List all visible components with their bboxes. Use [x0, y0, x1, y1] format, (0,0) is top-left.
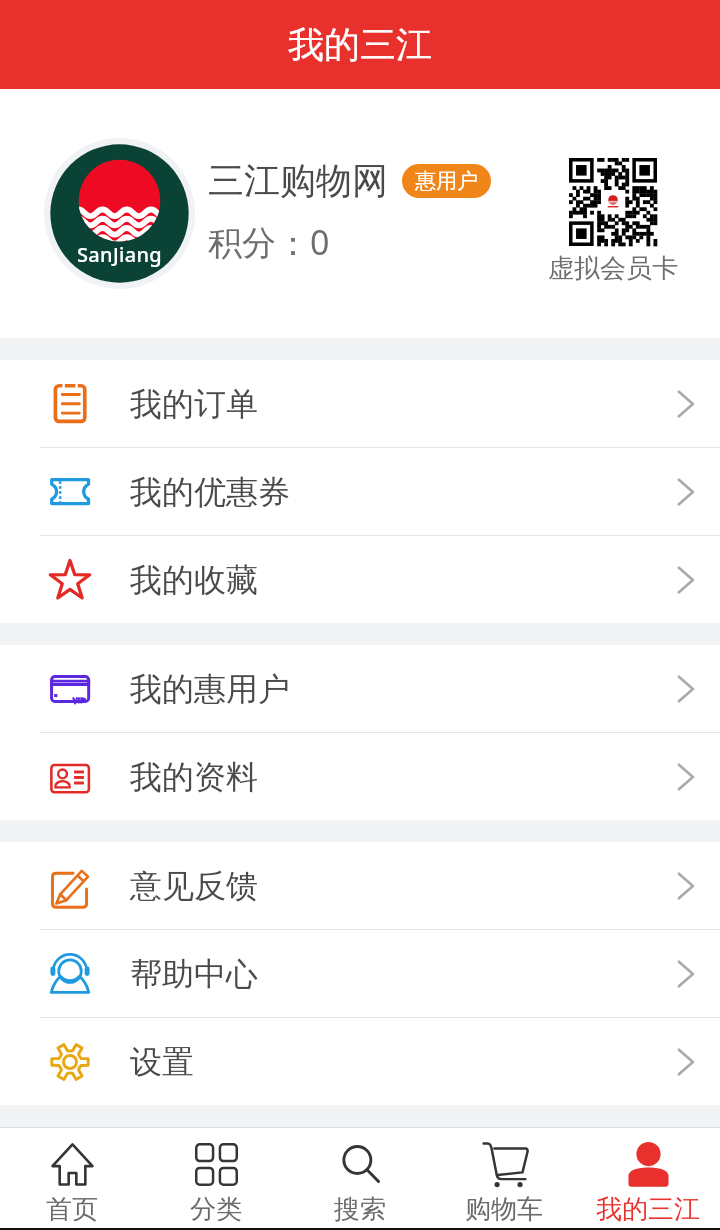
button[interactable]: 我的优惠券 [0, 448, 720, 535]
button[interactable]: 我的资料 [0, 733, 720, 820]
staticText: SanJiang [77, 241, 162, 268]
button[interactable]: 意见反馈 [0, 842, 720, 929]
staticText: 我的惠用户 [130, 669, 290, 709]
staticText: 我的三江 [288, 22, 432, 67]
staticText: 我的优惠券 [130, 472, 290, 512]
button[interactable]: 我的订单 [0, 360, 720, 447]
button[interactable]: 我的惠用户 [0, 645, 720, 732]
button[interactable]: 首页 [0, 1128, 144, 1228]
staticText: 设置 [130, 1042, 194, 1082]
staticText: 我的订单 [130, 384, 258, 424]
staticText: 我的三江 [596, 1193, 700, 1226]
button[interactable]: 分类 [144, 1128, 288, 1228]
staticText: 虚拟会员卡 [548, 252, 678, 285]
button[interactable]: 设置 [0, 1018, 720, 1105]
staticText: 帮助中心 [130, 954, 258, 994]
button[interactable]: 我的三江 [576, 1128, 720, 1228]
button[interactable]: 惠用户 [402, 164, 491, 198]
staticText: 三江购物网 [208, 158, 388, 203]
staticText: 我的收藏 [130, 560, 258, 600]
button[interactable]: 虚拟会员卡 [545, 158, 681, 285]
staticText: 我的资料 [130, 757, 258, 797]
button[interactable]: 帮助中心 [0, 930, 720, 1017]
staticText: 惠用户 [415, 168, 478, 194]
staticText: 购物车 [465, 1193, 543, 1226]
button[interactable]: 我的收藏 [0, 536, 720, 623]
staticText: 积分：0 [208, 219, 330, 265]
staticText: 意见反馈 [130, 866, 258, 906]
button[interactable]: 搜索 [288, 1128, 432, 1228]
staticText: 搜索 [334, 1193, 386, 1226]
staticText: 首页 [46, 1193, 98, 1226]
staticText: 分类 [190, 1193, 242, 1226]
button[interactable]: Profile avatar [44, 138, 195, 289]
button[interactable]: 购物车 [432, 1128, 576, 1228]
